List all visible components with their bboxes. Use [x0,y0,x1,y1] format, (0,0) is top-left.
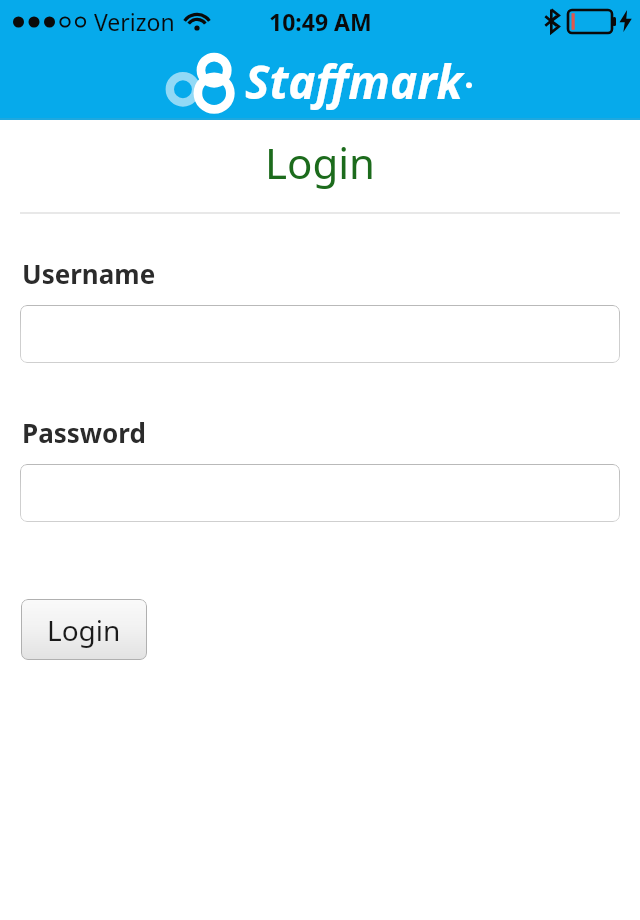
staticText: Verizon [94,6,175,37]
button[interactable] [20,464,620,522]
staticText: Login [47,611,121,649]
staticText: Staffmark [245,50,463,113]
button[interactable] [20,305,620,363]
staticText: Login [0,134,640,191]
staticText: Password [22,415,146,450]
staticText: Username [22,256,156,291]
button[interactable]: Login [21,599,147,660]
staticText: 10:49 AM [269,6,372,37]
